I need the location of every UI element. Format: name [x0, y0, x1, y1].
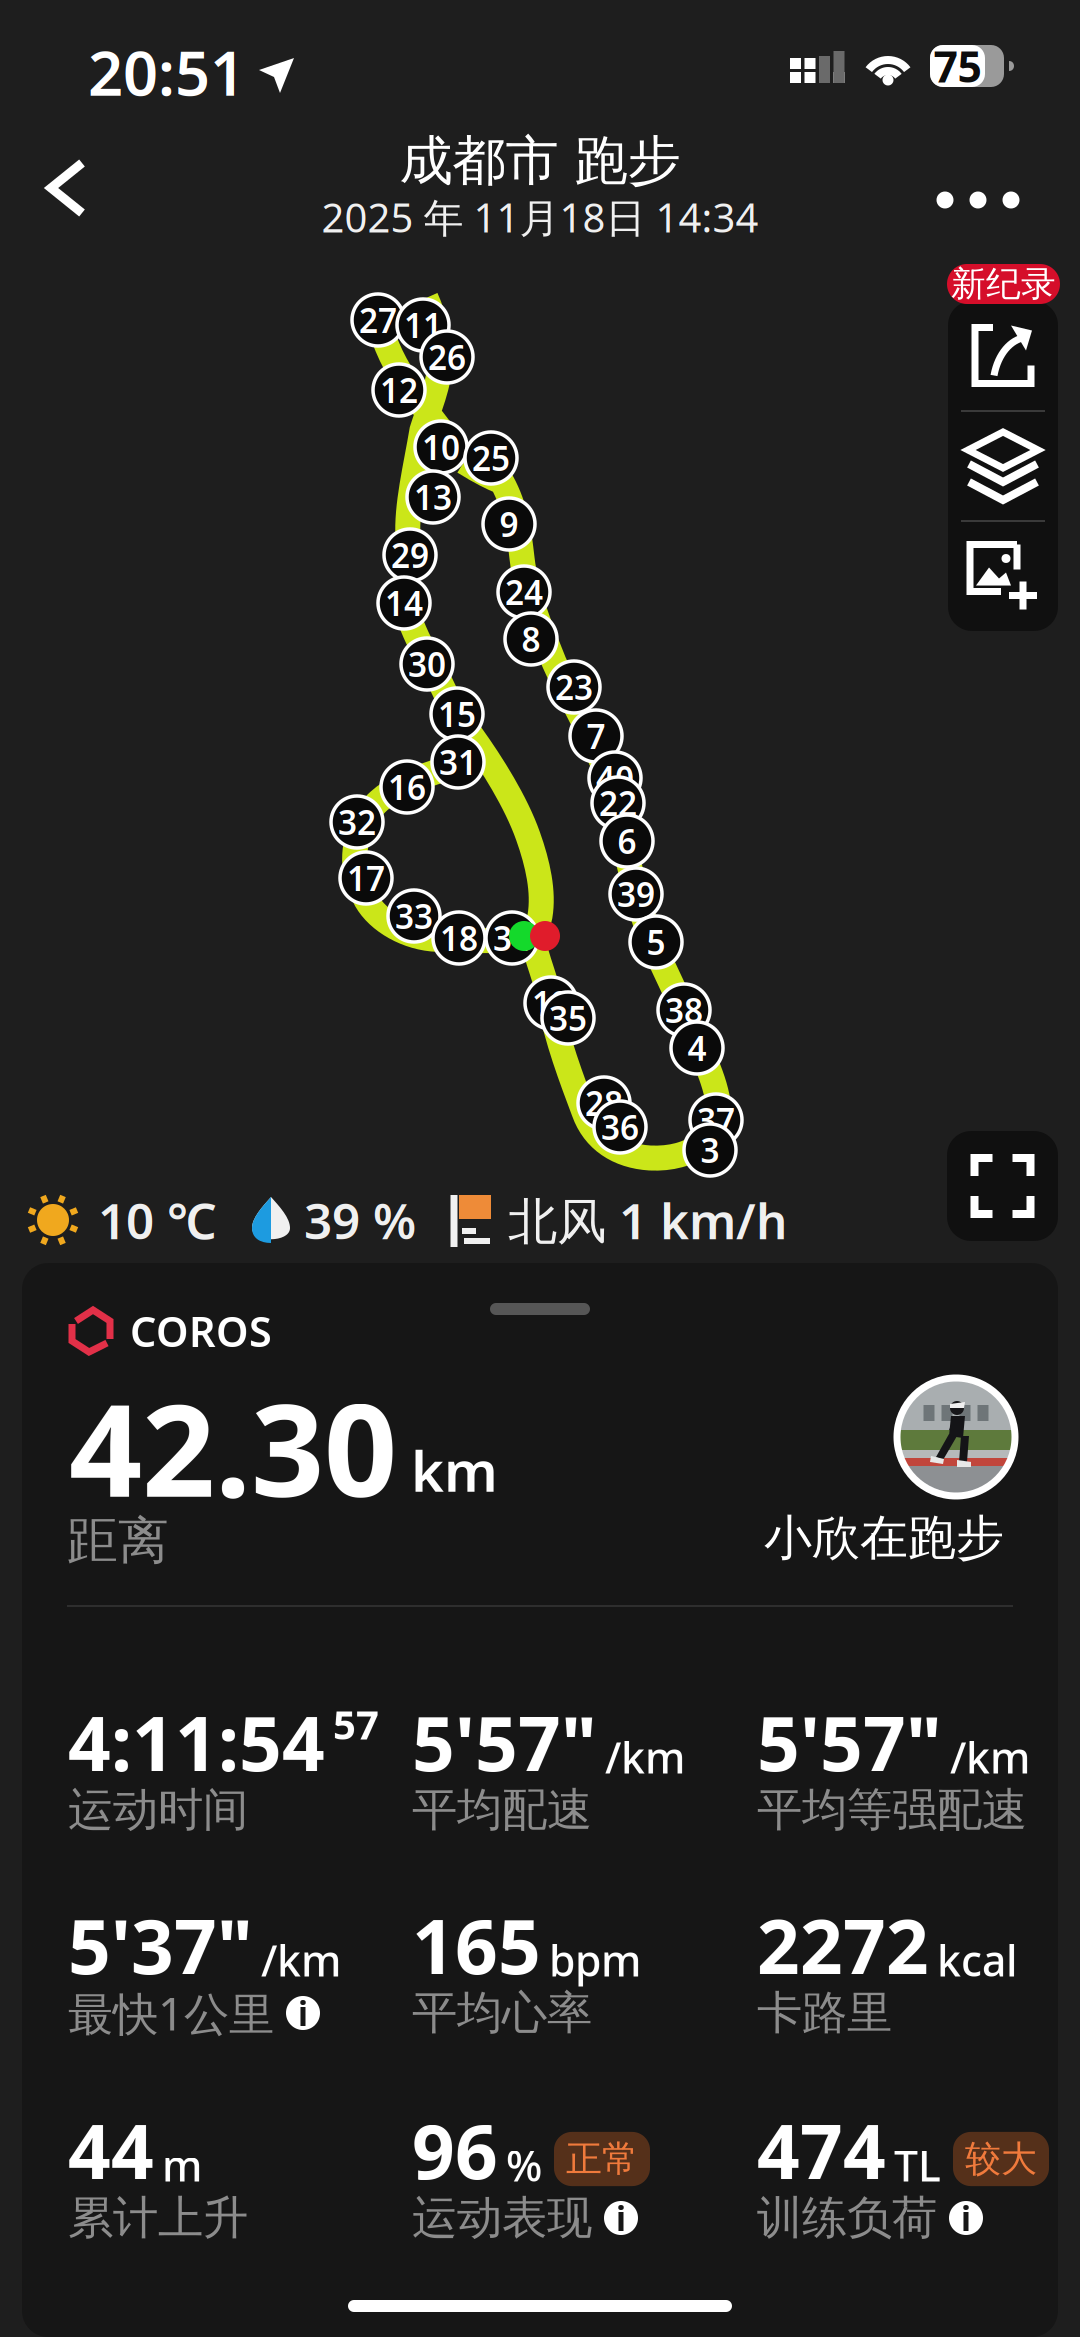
staticText: 北风 1 km/h	[508, 1187, 787, 1253]
staticText: 30	[408, 642, 446, 686]
staticText: COROS	[130, 1304, 272, 1358]
staticText: 最快1公里	[68, 1983, 274, 2043]
staticText: 22	[599, 781, 637, 825]
staticText: 474	[757, 2100, 886, 2200]
staticText: 20:51	[88, 31, 245, 113]
button[interactable]: Back	[6, 133, 126, 243]
staticText: 75	[933, 38, 981, 94]
staticText: m	[162, 2137, 202, 2193]
staticText: 17	[347, 856, 385, 900]
staticText: 42.30	[69, 1362, 397, 1532]
staticText: 成都市 跑步	[399, 128, 680, 194]
staticText: 31	[439, 740, 477, 784]
staticText: 4	[687, 1026, 706, 1070]
staticText: 平均等强配速	[757, 1782, 1027, 1838]
staticText: 9	[499, 502, 518, 546]
staticText: 平均心率	[412, 1985, 592, 2041]
staticText: 正常	[566, 2137, 638, 2181]
button[interactable]: Map layers	[948, 412, 1058, 520]
staticText: 29	[391, 533, 429, 577]
staticText: 平均配速	[412, 1782, 592, 1838]
staticText: 28	[585, 1081, 623, 1125]
staticText: 25	[472, 436, 510, 480]
staticText: 19	[532, 981, 570, 1025]
staticText: 5'57"	[757, 1692, 942, 1792]
staticText: 33	[395, 894, 433, 938]
staticText: 10	[422, 425, 460, 469]
staticText: 训练负荷	[757, 2190, 937, 2246]
staticText: 5	[646, 920, 665, 964]
staticText: 13	[414, 475, 452, 519]
staticText: 36	[601, 1105, 639, 1149]
staticText: 32	[338, 800, 376, 844]
staticText: 运动表现	[412, 2190, 592, 2246]
staticText: 44	[68, 2100, 154, 2200]
staticText: 24	[505, 570, 543, 614]
staticText: 38	[665, 988, 703, 1032]
staticText: 5'57"	[412, 1692, 597, 1792]
staticText: 23	[555, 665, 593, 709]
staticText: 累计上升	[68, 2190, 248, 2246]
staticText: i	[298, 1991, 308, 2035]
button[interactable]: Share	[948, 301, 1058, 410]
staticText: 小欣在跑步	[764, 1508, 1004, 1567]
staticText: i	[616, 2196, 626, 2240]
staticText: 6	[617, 819, 636, 863]
staticText: km	[411, 1433, 498, 1507]
button[interactable]: Add photo	[948, 522, 1058, 631]
staticText: 96	[412, 2100, 498, 2200]
button[interactable]: More options	[918, 150, 1038, 250]
staticText: 15	[438, 692, 476, 736]
staticText: 26	[428, 335, 466, 379]
staticText: /km	[261, 1932, 341, 1988]
staticText: 10 ℃	[98, 1187, 216, 1253]
staticText: 34	[493, 916, 531, 960]
staticText: 3	[700, 1128, 719, 1172]
staticText: 57	[333, 1697, 379, 1750]
staticText: 新纪录	[951, 263, 1056, 305]
staticText: 18	[440, 916, 478, 960]
staticText: 距离	[67, 1510, 169, 1572]
staticText: bpm	[549, 1932, 641, 1988]
staticText: 35	[549, 996, 587, 1040]
staticText: 40	[596, 756, 634, 800]
staticText: 较大	[965, 2137, 1037, 2181]
staticText: 11	[404, 303, 442, 347]
staticText: TL	[894, 2137, 941, 2193]
staticText: kcal	[937, 1932, 1018, 1988]
staticText: 8	[521, 617, 540, 661]
staticText: /km	[950, 1729, 1030, 1785]
staticText: 5'37"	[68, 1895, 253, 1995]
staticText: 16	[388, 765, 426, 809]
staticText: /km	[605, 1729, 685, 1785]
staticText: 39	[617, 872, 655, 916]
staticText: 37	[697, 1098, 735, 1142]
staticText: 4:11:54	[68, 1692, 325, 1792]
staticText: %	[506, 2137, 542, 2193]
staticText: 2272	[757, 1895, 929, 1995]
staticText: i	[961, 2196, 971, 2240]
staticText: 27	[359, 298, 397, 342]
staticText: 39 %	[304, 1187, 416, 1253]
staticText: 运动时间	[68, 1782, 248, 1838]
staticText: 卡路里	[757, 1985, 892, 2041]
staticText: 165	[412, 1895, 541, 1995]
staticText: 12	[380, 368, 418, 412]
staticText: 7	[586, 714, 605, 758]
staticText: 14	[385, 581, 423, 625]
staticText: 2025 年 11月18日 14:34	[321, 190, 758, 243]
button[interactable]: Full screen map	[947, 1131, 1058, 1241]
